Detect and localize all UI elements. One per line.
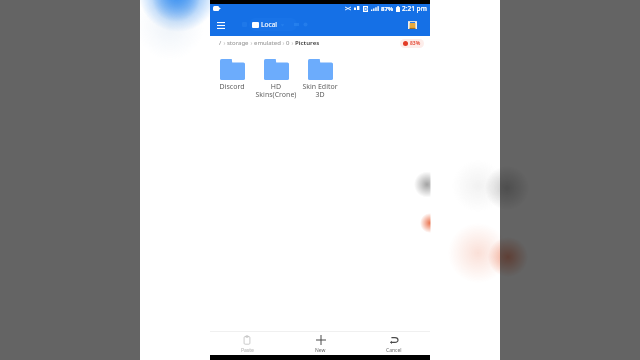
staticText: Paste [241,347,254,354]
button[interactable]: Cancel [357,332,430,355]
button[interactable]: / [219,39,222,47]
button[interactable]: 83% [400,39,424,48]
staticText: 87% [381,5,394,13]
staticText: Cancel [386,347,402,354]
button[interactable]: New [284,332,357,355]
button[interactable]: Local [249,18,297,31]
staticText: HD Skins(Crone) [255,82,297,99]
button[interactable]: Paste [210,332,284,355]
button[interactable]: Discord [210,59,254,92]
staticText: New [315,347,326,354]
button[interactable]: Pictures [295,39,320,47]
staticText: Skin Editor 3D [299,82,341,99]
staticText: Local [261,20,278,29]
button[interactable]: Menu [213,17,229,33]
button[interactable]: storage [227,39,249,47]
button[interactable]: emulated [254,39,281,47]
staticText: 83% [410,40,421,47]
staticText: 2:21 pm [402,4,427,13]
staticText: › [281,39,286,47]
button[interactable]: 0 [286,39,290,47]
staticText: Discord [211,82,253,92]
staticText: › [290,39,295,47]
staticText: › [222,39,227,47]
button[interactable]: Promo [405,18,419,32]
button[interactable]: Skin Editor 3D [298,59,342,99]
staticText: › [249,39,254,47]
button[interactable]: HD Skins(Crone) [254,59,298,99]
staticText: D [364,6,368,12]
